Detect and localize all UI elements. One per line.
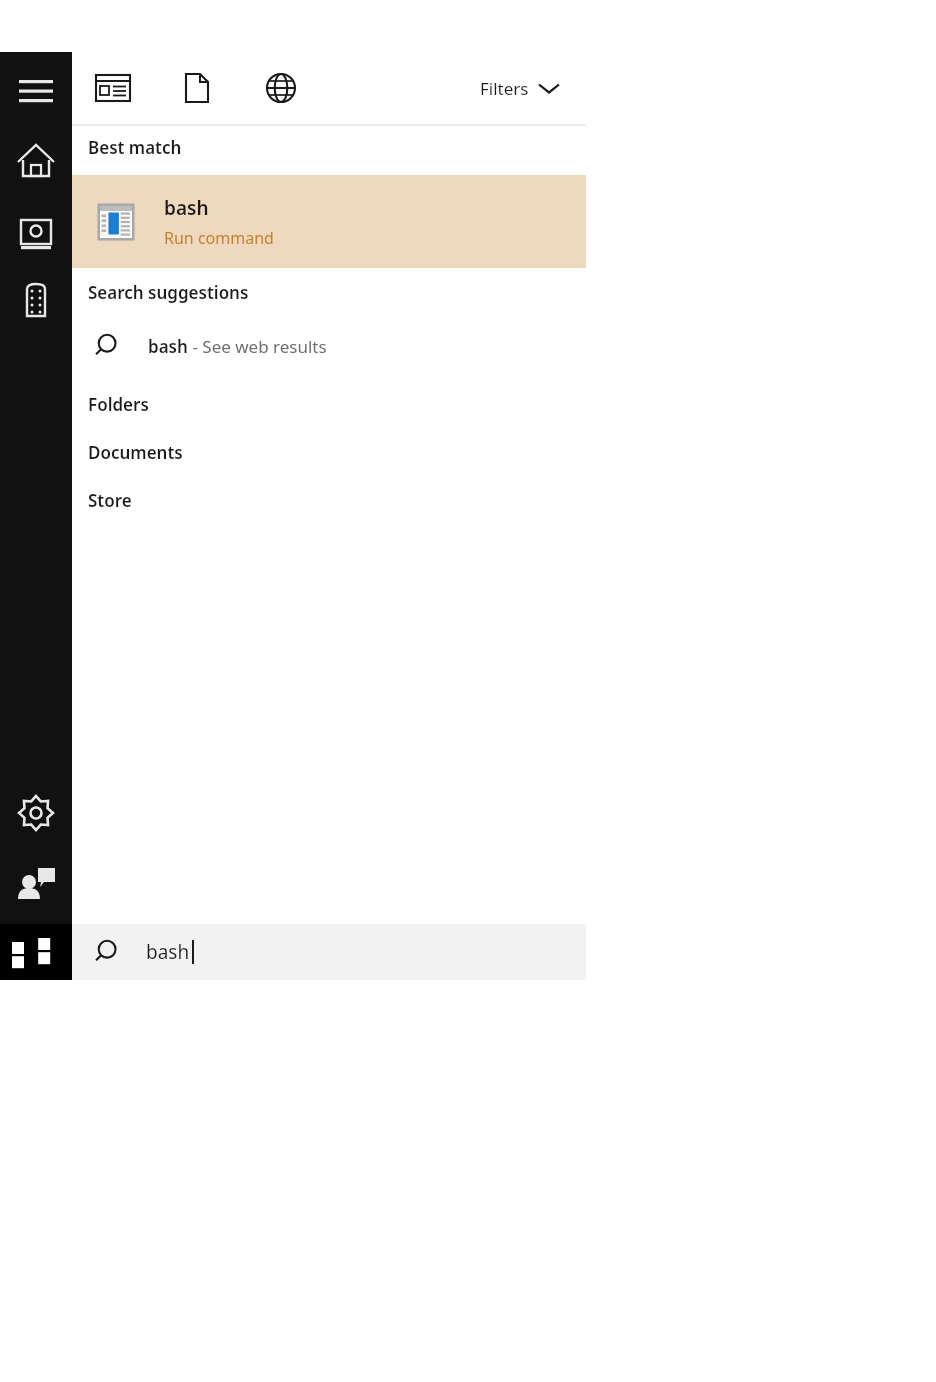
staticText: Store (88, 489, 132, 512)
staticText: Best match (88, 136, 182, 159)
staticText: Documents (88, 441, 183, 464)
button[interactable]: Device (8, 274, 64, 326)
staticText: Filters (480, 77, 529, 100)
staticText: Run command (164, 227, 274, 249)
staticText: bash (148, 335, 188, 358)
button[interactable]: Menu (8, 66, 64, 116)
button[interactable]: bash (72, 924, 586, 980)
button[interactable]: bash (72, 320, 586, 372)
button[interactable]: Home (8, 137, 64, 189)
staticText: - See web results (188, 335, 327, 358)
staticText: bash (146, 939, 190, 965)
button[interactable]: Folders (72, 384, 586, 424)
button[interactable]: Pictures (8, 209, 64, 261)
staticText: Search suggestions (88, 281, 249, 304)
button[interactable]: Documents (170, 62, 224, 114)
staticText: Folders (88, 393, 149, 416)
button[interactable]: Apps (86, 62, 140, 114)
button[interactable]: Store (72, 480, 586, 520)
button[interactable]: Feedback (8, 859, 64, 911)
button[interactable]: Web (254, 62, 308, 114)
button[interactable]: Documents (72, 432, 586, 472)
button[interactable]: Filters (472, 66, 567, 110)
staticText: bash (164, 195, 209, 221)
button[interactable]: bash (72, 175, 586, 268)
button[interactable]: Start (0, 924, 72, 980)
button[interactable]: Settings (8, 787, 64, 839)
